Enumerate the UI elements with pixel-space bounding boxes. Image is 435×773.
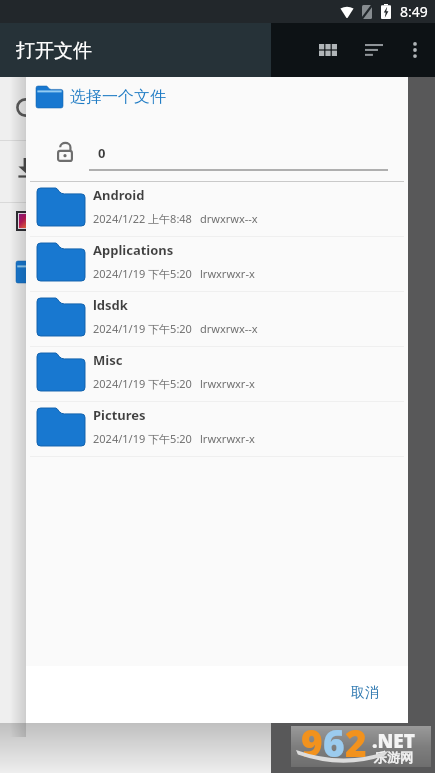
staticText: 6 [323, 717, 345, 758]
staticText: Applications [93, 241, 174, 259]
staticText: .NET [372, 728, 415, 754]
staticText: 打开文件 [16, 39, 92, 63]
button[interactable]: Sort [351, 23, 397, 77]
button[interactable]: Grid view [305, 23, 351, 77]
staticText: 2024/1/19 下午5:20 [93, 431, 192, 446]
staticText: 2024/1/19 下午5:20 [93, 266, 192, 281]
button[interactable]: 打开文件 [0, 23, 271, 77]
staticText: drwxrwx--x [200, 321, 258, 336]
staticText: 0 [98, 144, 106, 162]
staticText: lrwxrwxr-x [200, 431, 255, 446]
staticText: Misc [93, 351, 123, 369]
staticText: 乐游网 [374, 749, 413, 765]
staticText: Android [93, 186, 145, 204]
button[interactable]: Pictures [26, 402, 408, 456]
button[interactable]: 取消 [336, 674, 394, 712]
staticText: 2024/1/19 下午5:20 [93, 376, 192, 391]
button[interactable]: Misc [26, 347, 408, 401]
staticText: 取消 [351, 684, 379, 702]
button[interactable]: Android [26, 182, 408, 236]
staticText: lrwxrwxr-x [200, 376, 255, 391]
staticText: Pictures [93, 406, 146, 424]
staticText: drwxrwx--x [200, 211, 258, 226]
staticText: 9 [301, 717, 323, 758]
staticText: lrwxrwxr-x [200, 266, 255, 281]
button[interactable]: More options [397, 23, 433, 77]
staticText: 2 [345, 717, 367, 758]
button[interactable]: ldsdk [26, 292, 408, 346]
staticText: 2024/1/22 上午8:48 [93, 211, 192, 226]
staticText: 8:49 [400, 2, 428, 21]
staticText: 2024/1/19 下午5:20 [93, 321, 192, 336]
button[interactable]: Applications [26, 237, 408, 291]
staticText: ldsdk [93, 296, 128, 314]
staticText: 选择一个文件 [70, 87, 166, 107]
